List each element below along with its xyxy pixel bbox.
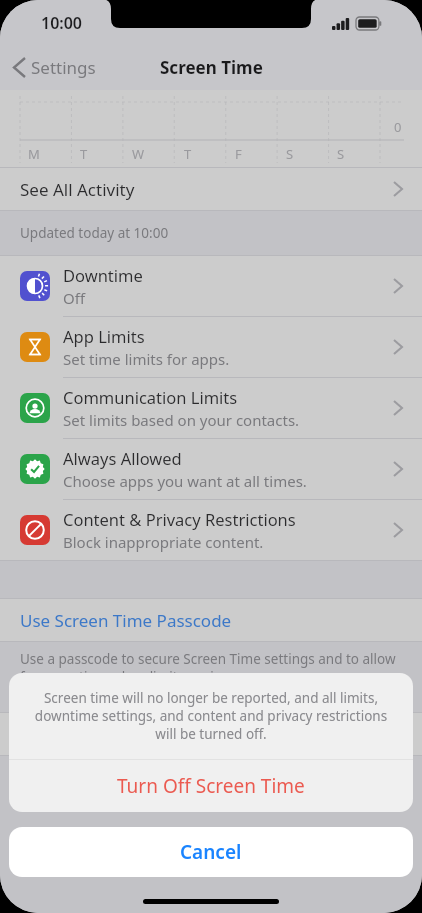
staticText: Off bbox=[63, 288, 86, 308]
staticText: F bbox=[235, 145, 242, 163]
button[interactable]: Settings bbox=[0, 50, 106, 85]
button[interactable]: Use Screen Time Passcode bbox=[0, 599, 422, 641]
staticText: S bbox=[286, 145, 294, 163]
button[interactable]: Downtime bbox=[0, 256, 422, 317]
button[interactable]: App Limits bbox=[0, 317, 422, 378]
staticText: Cancel bbox=[180, 839, 242, 865]
staticText: Use a passcode to secure Screen Time set… bbox=[20, 650, 400, 686]
staticText: Block inappropriate content. bbox=[63, 532, 264, 552]
staticText: Turn Off Screen Time bbox=[20, 723, 189, 746]
staticText: Screen time will no longer be reported, … bbox=[25, 689, 397, 743]
button[interactable]: Communication Limits bbox=[0, 378, 422, 439]
staticText: M bbox=[28, 145, 40, 163]
staticText: App Limits bbox=[63, 325, 145, 347]
staticText: 0 bbox=[394, 118, 402, 136]
staticText: Set time limits for apps. bbox=[63, 349, 230, 369]
staticText: Turn Off Screen Time bbox=[117, 773, 305, 799]
staticText: Communication Limits bbox=[63, 386, 238, 408]
staticText: Always Allowed bbox=[63, 447, 182, 469]
button[interactable]: Turn Off Screen Time bbox=[9, 760, 413, 812]
staticText: 10:00 bbox=[41, 12, 83, 34]
staticText: Screen Time bbox=[160, 56, 263, 79]
staticText: T bbox=[80, 145, 88, 163]
staticText: See All Activity bbox=[20, 178, 135, 201]
button[interactable]: Turn Off Screen Time bbox=[0, 713, 422, 755]
staticText: Downtime bbox=[63, 264, 143, 286]
staticText: T bbox=[184, 145, 192, 163]
staticText: Choose apps you want at all times. bbox=[63, 471, 307, 491]
button[interactable]: Always Allowed bbox=[0, 439, 422, 500]
button[interactable]: Cancel bbox=[9, 827, 413, 877]
staticText: Use Screen Time Passcode bbox=[20, 609, 232, 632]
staticText: Content & Privacy Restrictions bbox=[63, 508, 296, 530]
staticText: S bbox=[337, 145, 345, 163]
staticText: Set limits based on your contacts. bbox=[63, 410, 300, 430]
staticText: Updated today at 10:00 bbox=[20, 224, 169, 242]
staticText: Settings bbox=[31, 56, 96, 79]
button[interactable]: Content & Privacy Restrictions bbox=[0, 500, 422, 560]
button[interactable]: See All Activity bbox=[0, 168, 422, 210]
staticText: W bbox=[132, 145, 145, 163]
